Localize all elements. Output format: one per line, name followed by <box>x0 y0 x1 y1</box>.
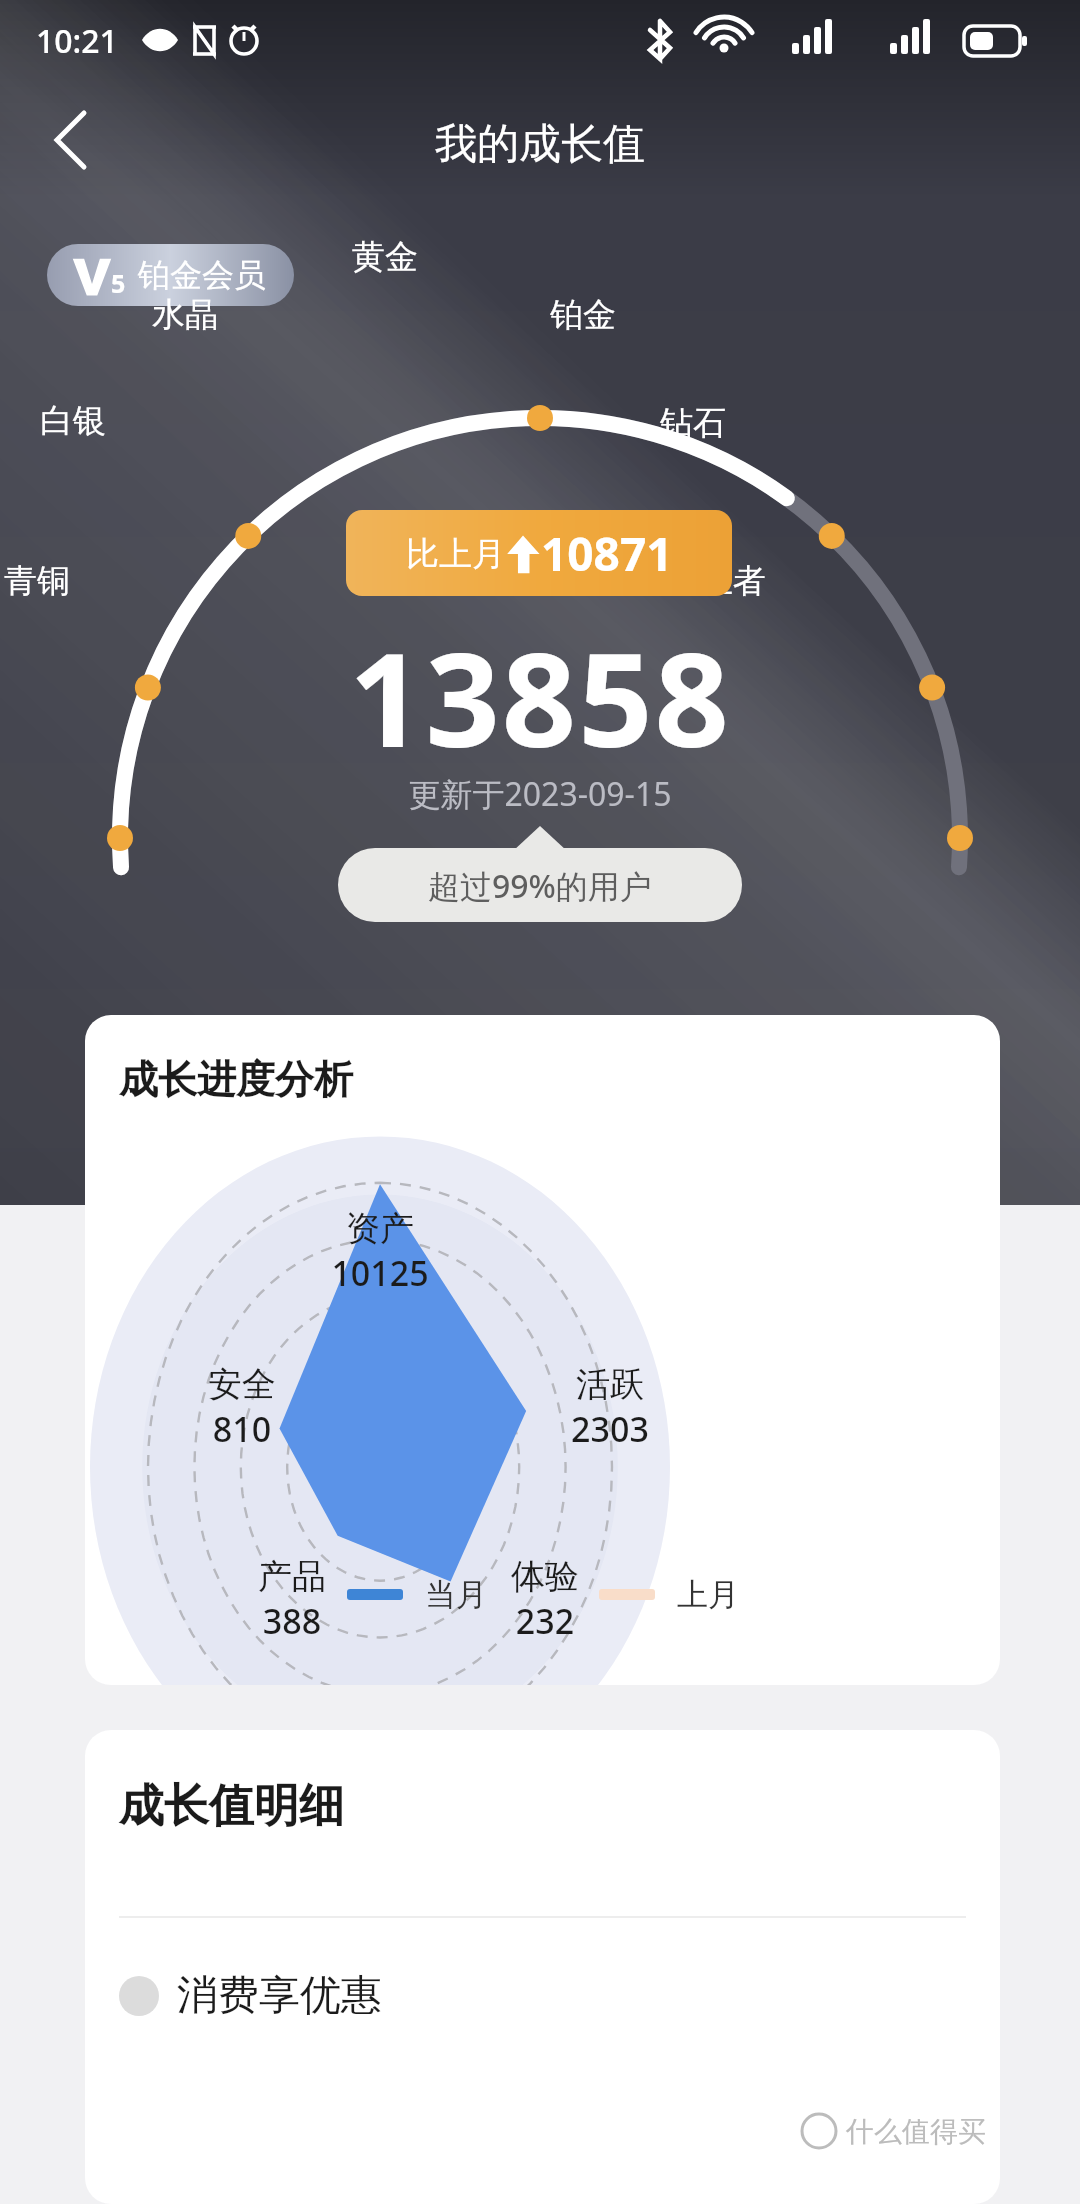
staticText: 232 <box>460 1598 630 1644</box>
staticText: 更新于2023-09-15 <box>0 772 1080 816</box>
staticText: 388 <box>207 1598 377 1644</box>
button[interactable]: 产品 <box>207 1555 377 1644</box>
staticText: 10871 <box>541 522 673 585</box>
button[interactable]: 超过99%的用户 <box>338 826 742 922</box>
staticText: 体验 <box>460 1555 630 1598</box>
button[interactable]: 青铜 <box>4 560 70 602</box>
staticText: 10125 <box>295 1250 465 1296</box>
staticText: 13858 <box>0 608 1080 785</box>
button[interactable]: 王者 <box>700 560 766 602</box>
staticText: 超过99%的用户 <box>428 864 652 908</box>
staticText: 上月 <box>677 1575 739 1614</box>
staticText: 10:21 <box>36 19 118 63</box>
staticText: 当月 <box>425 1575 487 1614</box>
staticText: 2303 <box>525 1406 695 1452</box>
staticText: 安全 <box>157 1363 327 1406</box>
button[interactable]: 钻石 <box>660 402 726 444</box>
button[interactable]: 安全 <box>157 1363 327 1452</box>
staticText: 成长值明细 <box>119 1778 344 1835</box>
staticText: 5 <box>111 266 126 300</box>
button[interactable]: 白银 <box>40 400 106 442</box>
staticText: 资产 <box>295 1207 465 1250</box>
staticText: 810 <box>157 1406 327 1452</box>
button[interactable]: 活跃 <box>525 1363 695 1452</box>
staticText: 活跃 <box>525 1363 695 1406</box>
button[interactable]: 水晶 <box>152 294 218 336</box>
button[interactable]: 成长值明细 <box>85 1730 1000 2204</box>
button[interactable]: 比上月 <box>346 510 732 596</box>
staticText: 什么值得买 <box>846 2114 986 2149</box>
button[interactable]: 资产 <box>295 1207 465 1296</box>
staticText: 我的成长值 <box>0 118 1080 171</box>
button[interactable]: Back <box>22 92 118 188</box>
button[interactable]: 铂金 <box>550 294 616 336</box>
button[interactable]: 体验 <box>460 1555 630 1644</box>
staticText: 产品 <box>207 1555 377 1598</box>
staticText: 铂金会员 <box>138 255 266 295</box>
staticText: 消费享优惠 <box>177 1970 382 2022</box>
button[interactable]: 黄金 <box>352 236 418 278</box>
staticText: 比上月 <box>406 533 505 575</box>
staticText: 成长进度分析 <box>119 1055 353 1104</box>
button[interactable]: 成长进度分析 <box>85 1015 1000 1685</box>
button[interactable]: 5 <box>47 244 294 306</box>
